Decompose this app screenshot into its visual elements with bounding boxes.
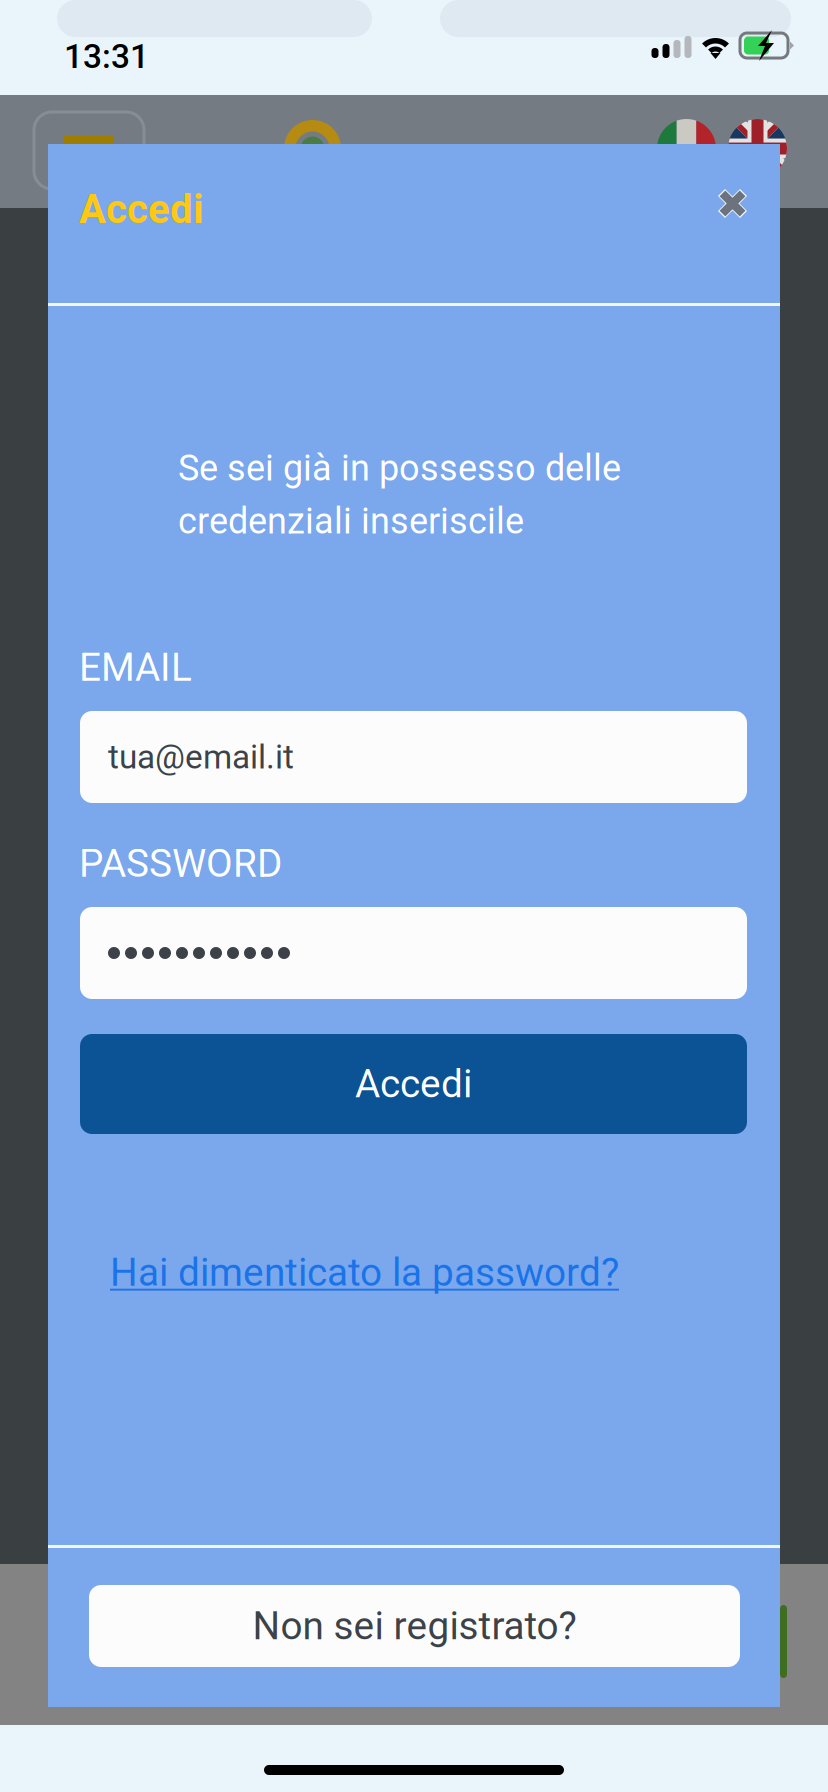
staticText: Accedi <box>79 186 204 233</box>
staticText: Se sei già in possesso delle <box>178 447 621 489</box>
button[interactable]: Chiudi <box>705 176 760 231</box>
button[interactable]: Hai dimenticato la password? <box>110 1250 619 1295</box>
staticText: Accedi <box>355 1061 472 1107</box>
button[interactable]: Accedi <box>80 1034 747 1134</box>
staticText: credenziali inseriscile <box>178 500 524 542</box>
staticText: Hai dimenticato la password? <box>110 1250 619 1295</box>
staticText: PASSWORD <box>79 841 282 886</box>
staticText: 13:31 <box>64 37 149 76</box>
staticText: tua@email.it <box>108 737 294 777</box>
staticText: Non sei registrato? <box>252 1603 576 1649</box>
button[interactable]: Non sei registrato? <box>89 1585 740 1667</box>
staticText: EMAIL <box>79 645 192 690</box>
